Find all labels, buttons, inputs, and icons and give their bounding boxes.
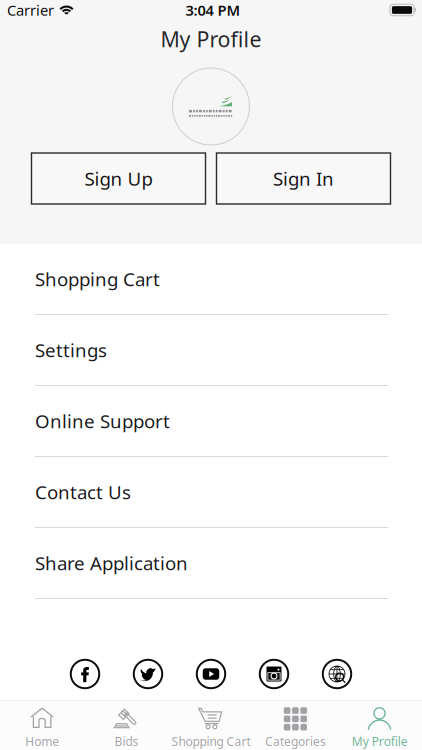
- staticText: Sign Up: [84, 166, 152, 191]
- button[interactable]: Sign In: [216, 153, 390, 204]
- button[interactable]: Instagram: [259, 659, 289, 689]
- button[interactable]: Contact Us: [0, 457, 422, 528]
- button[interactable]: Online Support: [0, 386, 422, 457]
- staticText: 3:04 PM: [185, 0, 240, 20]
- button[interactable]: Share Application: [0, 528, 422, 599]
- button[interactable]: Shopping Cart: [0, 244, 422, 315]
- button[interactable]: Shopping Cart: [169, 700, 253, 750]
- staticText: Carrier: [7, 0, 54, 20]
- staticText: Shopping Cart: [171, 733, 250, 749]
- staticText: My Profile: [352, 733, 408, 749]
- staticText: Online Support: [35, 409, 170, 433]
- button[interactable]: Twitter: [133, 659, 163, 689]
- button[interactable]: Website: [322, 659, 352, 689]
- button[interactable]: YouTube: [196, 659, 226, 689]
- staticText: Bids: [115, 733, 139, 749]
- staticText: Share Application: [35, 551, 188, 575]
- button[interactable]: Facebook: [70, 659, 100, 689]
- staticText: Contact Us: [35, 480, 131, 504]
- staticText: My Profile: [160, 25, 261, 53]
- staticText: Sign In: [273, 166, 334, 191]
- button[interactable]: Sign Up: [31, 153, 205, 204]
- staticText: Settings: [35, 338, 107, 362]
- button[interactable]: My Profile: [338, 700, 422, 750]
- staticText: Categories: [265, 733, 326, 749]
- button[interactable]: Settings: [0, 315, 422, 386]
- staticText: Shopping Cart: [35, 267, 160, 291]
- button[interactable]: Categories: [253, 700, 338, 750]
- staticText: Home: [25, 733, 59, 749]
- button[interactable]: Home: [0, 700, 84, 750]
- button[interactable]: Bids: [84, 700, 169, 750]
